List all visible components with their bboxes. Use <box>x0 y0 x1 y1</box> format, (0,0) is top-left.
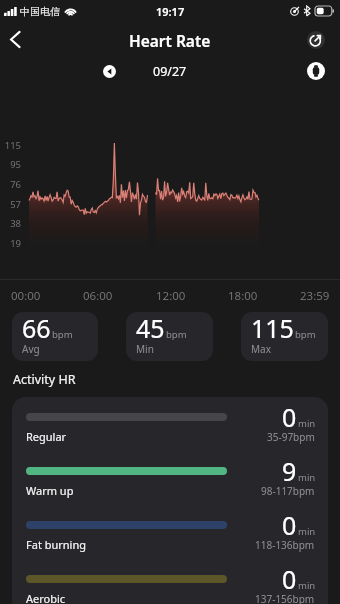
button[interactable]: Back <box>2 26 28 52</box>
staticText: 0 <box>282 400 297 434</box>
staticText: 118-136bpm <box>255 538 315 552</box>
staticText: 45 <box>136 312 165 345</box>
staticText: 95 <box>0 158 21 171</box>
staticText: bpm <box>52 328 73 341</box>
staticText: 115 <box>251 312 294 345</box>
staticText: 06:00 <box>83 288 113 304</box>
button[interactable]: Previous day <box>101 63 118 80</box>
staticText: min <box>298 471 316 484</box>
staticText: 57 <box>0 198 21 211</box>
button[interactable]: Share <box>307 31 325 49</box>
staticText: 19 <box>0 237 21 250</box>
staticText: 98-117bpm <box>261 484 315 498</box>
staticText: Avg <box>22 342 40 356</box>
staticText: 00:00 <box>11 288 41 304</box>
staticText: 12:00 <box>156 288 186 304</box>
staticText: 09/27 <box>153 63 187 80</box>
staticText: min <box>298 579 316 592</box>
button[interactable]: Fat burning <box>12 505 328 559</box>
button[interactable]: 45 <box>126 312 213 361</box>
staticText: 115 <box>0 139 21 152</box>
staticText: 66 <box>22 312 51 345</box>
button[interactable]: Regular <box>12 397 328 451</box>
staticText: Fat burning <box>26 537 87 552</box>
staticText: Max <box>251 342 271 356</box>
staticText: 137-156bpm <box>255 592 315 604</box>
button[interactable]: Aerobic <box>12 559 328 604</box>
button[interactable]: Device <box>307 62 325 80</box>
staticText: 0 <box>282 562 297 596</box>
staticText: min <box>298 417 316 430</box>
staticText: 38 <box>0 217 21 230</box>
staticText: Heart Rate <box>129 30 211 51</box>
staticText: 9 <box>282 454 297 488</box>
staticText: Aerobic <box>26 591 66 604</box>
staticText: bpm <box>295 328 316 341</box>
button[interactable]: 115 <box>241 312 328 361</box>
staticText: Regular <box>26 429 67 444</box>
staticText: 中国电信 <box>20 5 60 18</box>
staticText: bpm <box>166 328 187 341</box>
staticText: Min <box>136 342 154 356</box>
staticText: Warm up <box>26 483 74 498</box>
staticText: Activity HR <box>13 371 76 388</box>
button[interactable]: 66 <box>12 312 98 361</box>
staticText: 0 <box>282 508 297 542</box>
staticText: 76 <box>0 178 21 191</box>
button[interactable]: Warm up <box>12 451 328 505</box>
staticText: 19:17 <box>156 4 185 19</box>
staticText: 23:59 <box>300 288 330 304</box>
staticText: min <box>298 525 316 538</box>
staticText: 18:00 <box>228 288 258 304</box>
staticText: 35-97bpm <box>267 430 315 444</box>
